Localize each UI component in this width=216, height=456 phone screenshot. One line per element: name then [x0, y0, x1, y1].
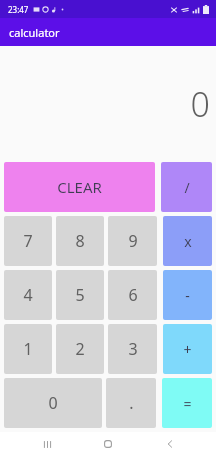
- button[interactable]: +: [163, 324, 212, 374]
- staticText: 0: [48, 392, 58, 414]
- staticText: /: [184, 178, 190, 197]
- button[interactable]: 7: [4, 216, 52, 266]
- button[interactable]: =: [162, 378, 212, 428]
- button[interactable]: 0: [4, 378, 102, 428]
- staticText: calculator: [9, 25, 60, 40]
- staticText: 2: [75, 338, 85, 360]
- staticText: =: [183, 394, 192, 413]
- staticText: 4: [23, 284, 33, 306]
- button[interactable]: -: [163, 270, 212, 320]
- button[interactable]: Recent apps: [32, 433, 62, 455]
- staticText: 5: [75, 284, 85, 306]
- button[interactable]: 5: [56, 270, 104, 320]
- button[interactable]: 9: [108, 216, 157, 266]
- button[interactable]: 8: [56, 216, 104, 266]
- button[interactable]: 1: [4, 324, 52, 374]
- button[interactable]: Home: [93, 433, 123, 455]
- button[interactable]: x: [163, 216, 212, 266]
- button[interactable]: 6: [108, 270, 157, 320]
- button[interactable]: Back: [155, 433, 185, 455]
- button[interactable]: 2: [56, 324, 104, 374]
- staticText: x: [184, 232, 192, 251]
- staticText: 6: [128, 284, 138, 306]
- button[interactable]: 4: [4, 270, 52, 320]
- button[interactable]: 3: [108, 324, 157, 374]
- staticText: .: [129, 392, 134, 414]
- staticText: CLEAR: [57, 177, 102, 197]
- button[interactable]: /: [161, 162, 212, 212]
- staticText: 3: [128, 338, 138, 360]
- staticText: 0: [190, 81, 210, 127]
- staticText: 23:47: [8, 4, 29, 15]
- staticText: +: [183, 340, 192, 359]
- button[interactable]: .: [106, 378, 156, 428]
- staticText: -: [185, 286, 190, 305]
- staticText: 9: [128, 230, 138, 252]
- staticText: 1: [23, 338, 33, 360]
- staticText: 7: [23, 230, 33, 252]
- staticText: 8: [75, 230, 85, 252]
- button[interactable]: CLEAR: [4, 162, 155, 212]
